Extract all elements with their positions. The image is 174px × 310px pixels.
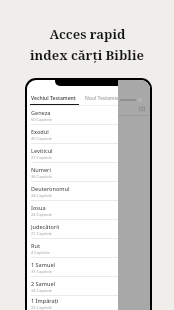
staticText: Numeri [31,166,51,173]
button[interactable]: 2 Samuel [27,277,150,296]
button[interactable]: Iosua [27,201,150,220]
staticText: Iosua [31,204,46,211]
staticText: Leviticul [31,147,53,154]
button[interactable]: Menu [138,92,150,104]
button[interactable]: 1 Împărați [27,296,150,310]
staticText: Rut [31,242,41,249]
button[interactable]: Exodul [27,125,150,144]
staticText: Geneza [31,109,51,116]
button[interactable]: Leviticul [27,144,150,163]
staticText: Deuteronomul [31,185,70,192]
staticText: 1 Samuel [31,261,56,268]
button[interactable]: Judecătorii [27,220,150,239]
button[interactable]: Numeri [27,163,150,182]
staticText: 24 Capitole [31,288,53,293]
button[interactable]: Deuteronomul [27,182,150,201]
button[interactable]: Theme [124,92,136,104]
staticText: 24 Capitole [31,212,53,217]
staticText: Judecătorii [31,223,60,230]
staticText: 50 Capitole [31,117,53,122]
staticText: 36 Capitole [31,174,53,179]
staticText: Noul Testament [85,95,123,102]
staticText: 27 Capitole [31,155,53,160]
staticText: 40 Capitole [31,136,53,141]
staticText: Vechiul Testament [31,95,76,102]
button[interactable]: Rut [27,239,150,258]
button[interactable]: 1 Samuel [27,258,150,277]
other: Expand Geneza [136,110,146,120]
button[interactable]: Noul Testament [84,95,124,102]
staticText: 1 Împărați [31,297,59,304]
staticText: 34 Capitole [31,193,53,198]
staticText: 31 Capitole [31,269,53,274]
button[interactable]: Geneza [27,106,150,125]
staticText: 2 Samuel [31,280,56,287]
staticText: Acces rapid [49,25,126,43]
staticText: index cărți Biblie [30,46,144,64]
staticText: Exodul [31,128,49,135]
staticText: 21 Capitole [31,231,53,236]
staticText: 4 Capitole [31,250,50,255]
button[interactable]: Vechiul Testament [30,95,77,102]
staticText: 22 Capitole [31,305,53,310]
